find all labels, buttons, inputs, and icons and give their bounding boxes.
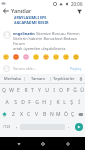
staticText: O [59,87,63,94]
button[interactable]: Send [72,120,85,133]
staticText: C [27,111,31,118]
staticText: Z [12,111,15,118]
staticText: Ş [70,99,73,106]
button[interactable]: L [61,96,68,108]
button[interactable]: Z [9,108,17,120]
button[interactable]: V [33,108,41,120]
button[interactable]: S [11,96,19,108]
button[interactable]: #PAYLASIMLI EPE [0,14,85,25]
button[interactable]: I [50,84,57,96]
button[interactable]: Filter [74,6,85,16]
staticText: Paylaş [70,66,82,71]
button[interactable]: H [40,96,47,108]
button[interactable]: Comma [13,120,20,133]
staticText: L [63,99,66,106]
staticText: Ü [80,87,84,94]
button[interactable]: Back [0,6,11,16]
staticText: X [20,111,23,118]
staticText: Tamam [31,76,45,81]
staticText: N [50,111,54,118]
button[interactable]: C [25,108,33,120]
staticText: #ACAPADMI KESIR [14,20,49,25]
button[interactable]: Back [12,137,25,150]
button[interactable]: Ç [69,108,76,120]
staticText: Ç [71,111,75,118]
staticText: Yanıtlar [11,7,32,15]
button[interactable]: W [8,84,15,96]
staticText: V [35,111,39,118]
button[interactable]: React [21,51,31,63]
button[interactable]: P [64,84,71,96]
button[interactable]: K [54,96,61,108]
button[interactable]: U [43,84,50,96]
button[interactable]: ?123 [0,120,13,133]
button[interactable]: J [47,96,54,108]
button[interactable]: React [11,51,21,63]
button[interactable]: Ğ [71,84,78,96]
button[interactable]: T [29,84,36,96]
button[interactable]: React [1,51,11,63]
staticText: Merhaba [4,76,21,81]
staticText: R [24,87,28,94]
staticText: Sitelerin haberin Bonushost Bedava Forum [13,36,83,46]
staticText: A [5,99,9,106]
staticText: Ğ [73,87,77,94]
staticText: W [9,87,14,94]
staticText: H [42,99,46,106]
button[interactable]: Y [36,84,43,96]
button[interactable]: D [19,96,26,108]
button[interactable]: Period [65,120,72,133]
button[interactable]: Home [36,137,49,150]
staticText: B [43,111,47,118]
staticText: Q [2,87,6,94]
staticText: . [68,123,70,130]
button[interactable]: X [17,108,25,120]
button[interactable]: M [55,108,62,120]
button[interactable]: React [41,51,51,63]
staticText: P [66,87,70,94]
button[interactable]: A [3,96,11,108]
button[interactable]: React [61,51,71,63]
button[interactable]: Recents [61,137,74,150]
staticText: Sitemize Bonusu Hemen [36,31,80,36]
staticText: engelinatin [13,31,35,36]
button[interactable]: Teşekkürler [51,74,76,83]
button[interactable]: G [33,96,40,108]
staticText: Teşekkürler [53,76,75,81]
button[interactable]: Yorum ekle... [13,66,69,71]
button[interactable]: engelinatin [0,29,85,51]
button[interactable]: Ü [78,84,85,96]
button[interactable]: Tamam [25,74,50,83]
staticText: S [14,99,17,106]
staticText: #PAYLASIMLI EPE [14,15,47,20]
staticText: K [56,99,60,106]
staticText: U [45,87,49,94]
button[interactable]: Ö [62,108,69,120]
staticText: Y [38,87,41,94]
staticText: İ [78,99,80,106]
button[interactable]: React [51,51,61,63]
button[interactable]: F [26,96,33,108]
button[interactable]: Q [0,84,8,96]
button[interactable]: Ş [68,96,75,108]
button[interactable]: E [15,84,22,96]
staticText: M [56,111,61,118]
button[interactable]: React [71,51,81,63]
button[interactable]: İ [75,96,82,108]
staticText: ortak üyemden ulaşabilirsiniz. [13,46,67,51]
button[interactable]: Voice input [76,74,85,83]
staticText: G [35,99,39,106]
staticText: , [16,123,18,130]
staticText: D [21,99,25,106]
button[interactable]: Backspace [76,108,85,120]
button[interactable]: Paylaş [69,65,83,72]
button[interactable]: React [31,51,41,63]
button[interactable]: N [48,108,55,120]
button[interactable]: B [41,108,48,120]
button[interactable]: O [57,84,64,96]
button[interactable]: Merhaba [0,74,24,83]
button[interactable]: R [22,84,29,96]
staticText: T [31,87,34,94]
button[interactable]: Shift [0,108,9,120]
